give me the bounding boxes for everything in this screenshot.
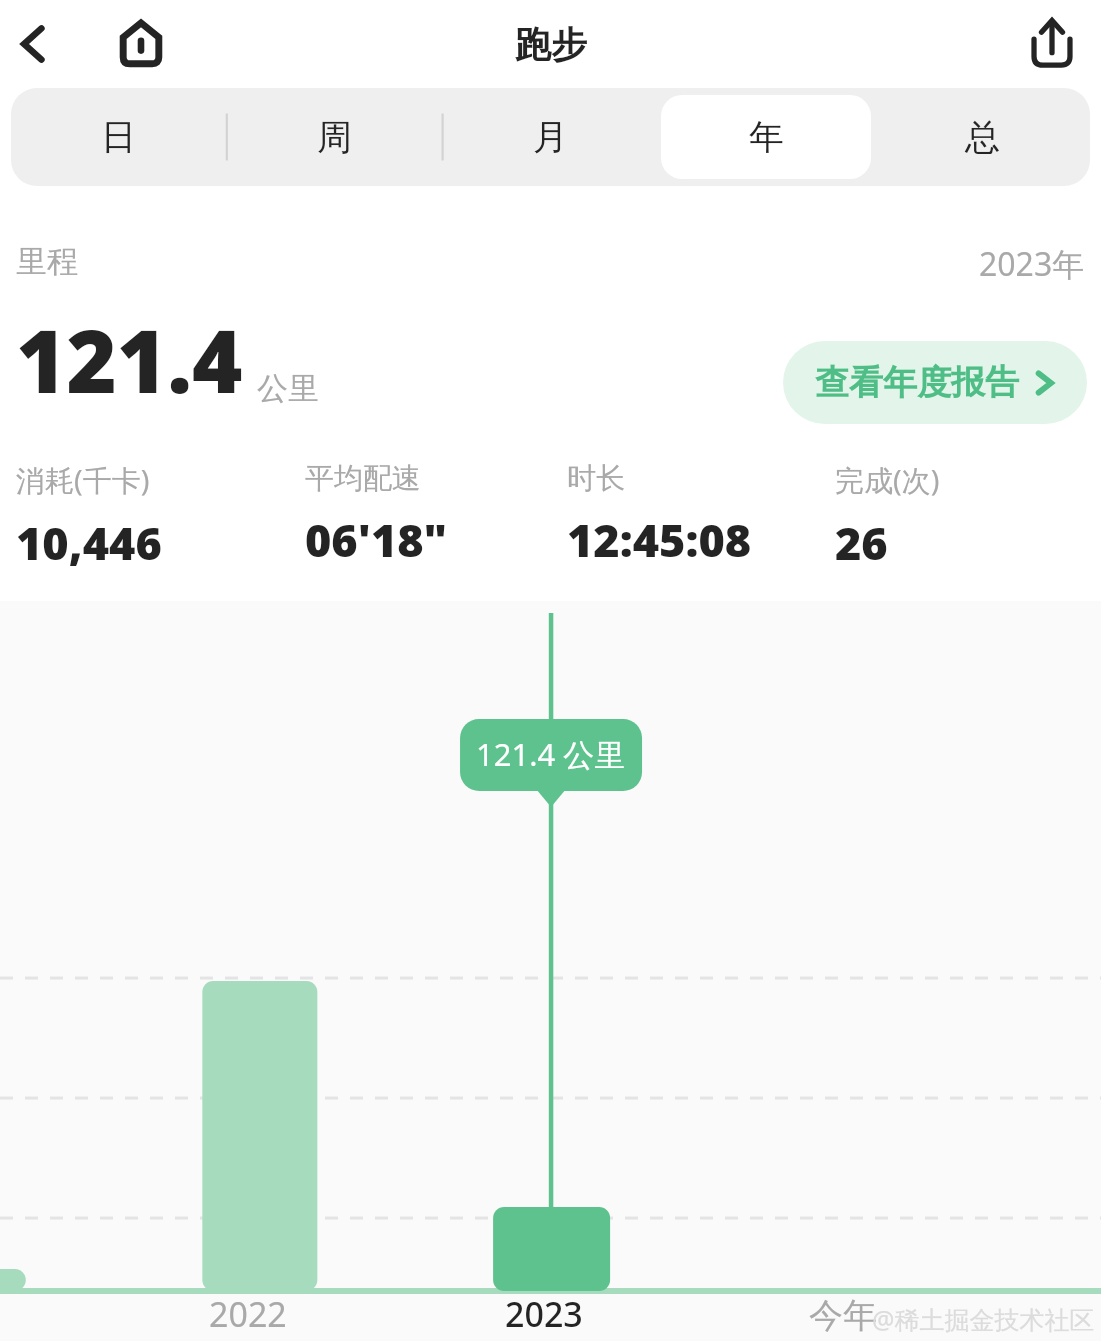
- button[interactable]: 总: [877, 95, 1087, 179]
- staticText: 时长: [567, 460, 625, 497]
- staticText: 26: [835, 512, 888, 573]
- staticText: @稀土掘金技术社区: [872, 1302, 1095, 1336]
- staticText: 查看年度报告: [815, 361, 1019, 404]
- staticText: 周: [317, 115, 352, 159]
- staticText: 月: [533, 115, 568, 159]
- staticText: 2023: [505, 1291, 583, 1337]
- staticText: 年: [749, 115, 784, 159]
- staticText: 今年: [809, 1294, 877, 1337]
- staticText: 121.4: [16, 301, 243, 418]
- button[interactable]: Back: [2, 15, 60, 73]
- staticText: 公里: [257, 369, 319, 408]
- staticText: 里程: [16, 242, 78, 281]
- staticText: 完成(次): [835, 460, 940, 500]
- staticText: 121.4 公里: [476, 733, 626, 775]
- staticText: 日: [101, 115, 136, 159]
- staticText: 跑步: [515, 22, 587, 67]
- staticText: 10,446: [16, 512, 162, 573]
- staticText: 2023年: [979, 242, 1085, 286]
- button[interactable]: 年: [661, 95, 871, 179]
- button[interactable]: 查看年度报告: [783, 341, 1087, 424]
- staticText: 2022: [209, 1291, 287, 1337]
- staticText: 总: [965, 115, 1000, 159]
- button[interactable]: 周: [229, 95, 439, 179]
- staticText: 平均配速: [305, 460, 421, 497]
- button[interactable]: 日: [14, 95, 223, 179]
- staticText: 06'18": [305, 509, 448, 570]
- button[interactable]: Home: [108, 11, 174, 77]
- staticText: 12:45:08: [567, 509, 752, 570]
- button[interactable]: Share: [1021, 13, 1083, 75]
- staticText: 消耗(千卡): [16, 460, 150, 500]
- button[interactable]: 月: [445, 95, 655, 179]
